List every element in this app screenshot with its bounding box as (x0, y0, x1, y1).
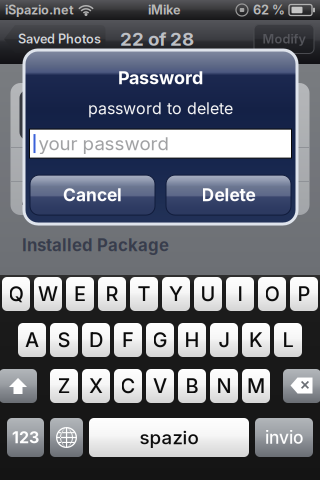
button[interactable]: 123 (7, 418, 44, 457)
button[interactable]: I (226, 277, 254, 311)
button[interactable]: P (290, 277, 318, 311)
button[interactable]: Q (2, 277, 30, 311)
staticText: L (282, 328, 293, 352)
button[interactable]: Z (50, 369, 78, 403)
staticText: H (184, 328, 199, 352)
staticText: OSFaker (80, 93, 157, 116)
staticText: Installed Package (22, 235, 169, 255)
button[interactable]: M (242, 369, 270, 403)
staticText: B (185, 374, 198, 398)
button[interactable]: J (210, 323, 238, 357)
button[interactable]: L (274, 323, 302, 357)
staticText: M (247, 374, 265, 398)
staticText: invio (265, 427, 303, 448)
staticText: D (89, 328, 103, 352)
staticText: K (249, 328, 263, 352)
button[interactable]: Delete (166, 175, 291, 215)
button[interactable]: E (66, 277, 94, 311)
staticText: 62 % (253, 2, 285, 18)
button[interactable]: X (82, 369, 110, 403)
staticText: password to delete (88, 99, 233, 118)
button[interactable]: invio (255, 418, 313, 457)
button[interactable]: N (210, 369, 238, 403)
staticText: Y (169, 282, 183, 306)
staticText: J (218, 328, 229, 352)
staticText: 22 of 28 (120, 28, 194, 50)
button[interactable]: T (130, 277, 158, 311)
button[interactable]: R (98, 277, 126, 311)
button[interactable]: Modify (254, 24, 314, 53)
staticText: T (137, 282, 150, 306)
button[interactable]: Cancel (30, 175, 155, 215)
staticText: Change Package Settings (21, 154, 233, 175)
button[interactable]: Shift (0, 369, 37, 403)
button[interactable]: D (82, 323, 110, 357)
staticText: iMike (148, 2, 181, 18)
button[interactable]: U (194, 277, 222, 311)
button[interactable]: K (242, 323, 270, 357)
button[interactable]: O (258, 277, 286, 311)
staticText: F (122, 328, 134, 352)
staticText: 2.0 (80, 117, 104, 136)
staticText: Cancel (63, 185, 122, 206)
staticText: 123 (12, 428, 39, 447)
staticText: U (200, 282, 215, 306)
button[interactable]: Saved Photos (3, 24, 106, 53)
staticText: iSpazio.net (5, 2, 74, 18)
staticText: X (89, 374, 103, 398)
staticText: S (57, 328, 70, 352)
button[interactable]: Next keyboard (50, 418, 83, 457)
button[interactable]: B (178, 369, 206, 403)
staticText: A (25, 328, 39, 352)
staticText: Author (21, 188, 80, 209)
staticText: P (297, 282, 310, 306)
staticText: spazio (139, 426, 198, 449)
staticText: Z (57, 374, 70, 398)
button[interactable]: W (34, 277, 62, 311)
staticText: your password (38, 132, 168, 155)
button[interactable]: H (178, 323, 206, 357)
button[interactable]: G (146, 323, 174, 357)
button[interactable]: A (18, 323, 46, 357)
staticText: Guillermo Moran (147, 188, 282, 209)
button[interactable]: F (114, 323, 142, 357)
button[interactable]: Delete (283, 369, 320, 403)
staticText: O (264, 282, 279, 306)
staticText: W (38, 282, 58, 306)
button[interactable]: V (146, 369, 174, 403)
button[interactable]: spazio (89, 418, 249, 457)
staticText: Q (8, 282, 23, 306)
staticText: Delete (201, 185, 255, 206)
staticText: G (152, 328, 167, 352)
button[interactable]: S (50, 323, 78, 357)
button[interactable]: C (114, 369, 142, 403)
staticText: V (153, 374, 167, 398)
staticText: R (105, 282, 118, 306)
staticText: I (237, 282, 242, 306)
staticText: C (120, 374, 135, 398)
staticText: Saved Photos (18, 31, 101, 47)
staticText: E (74, 282, 86, 306)
staticText: Password (118, 67, 203, 89)
staticText: Modify (262, 31, 305, 47)
staticText: N (216, 374, 231, 398)
button[interactable]: Y (162, 277, 190, 311)
